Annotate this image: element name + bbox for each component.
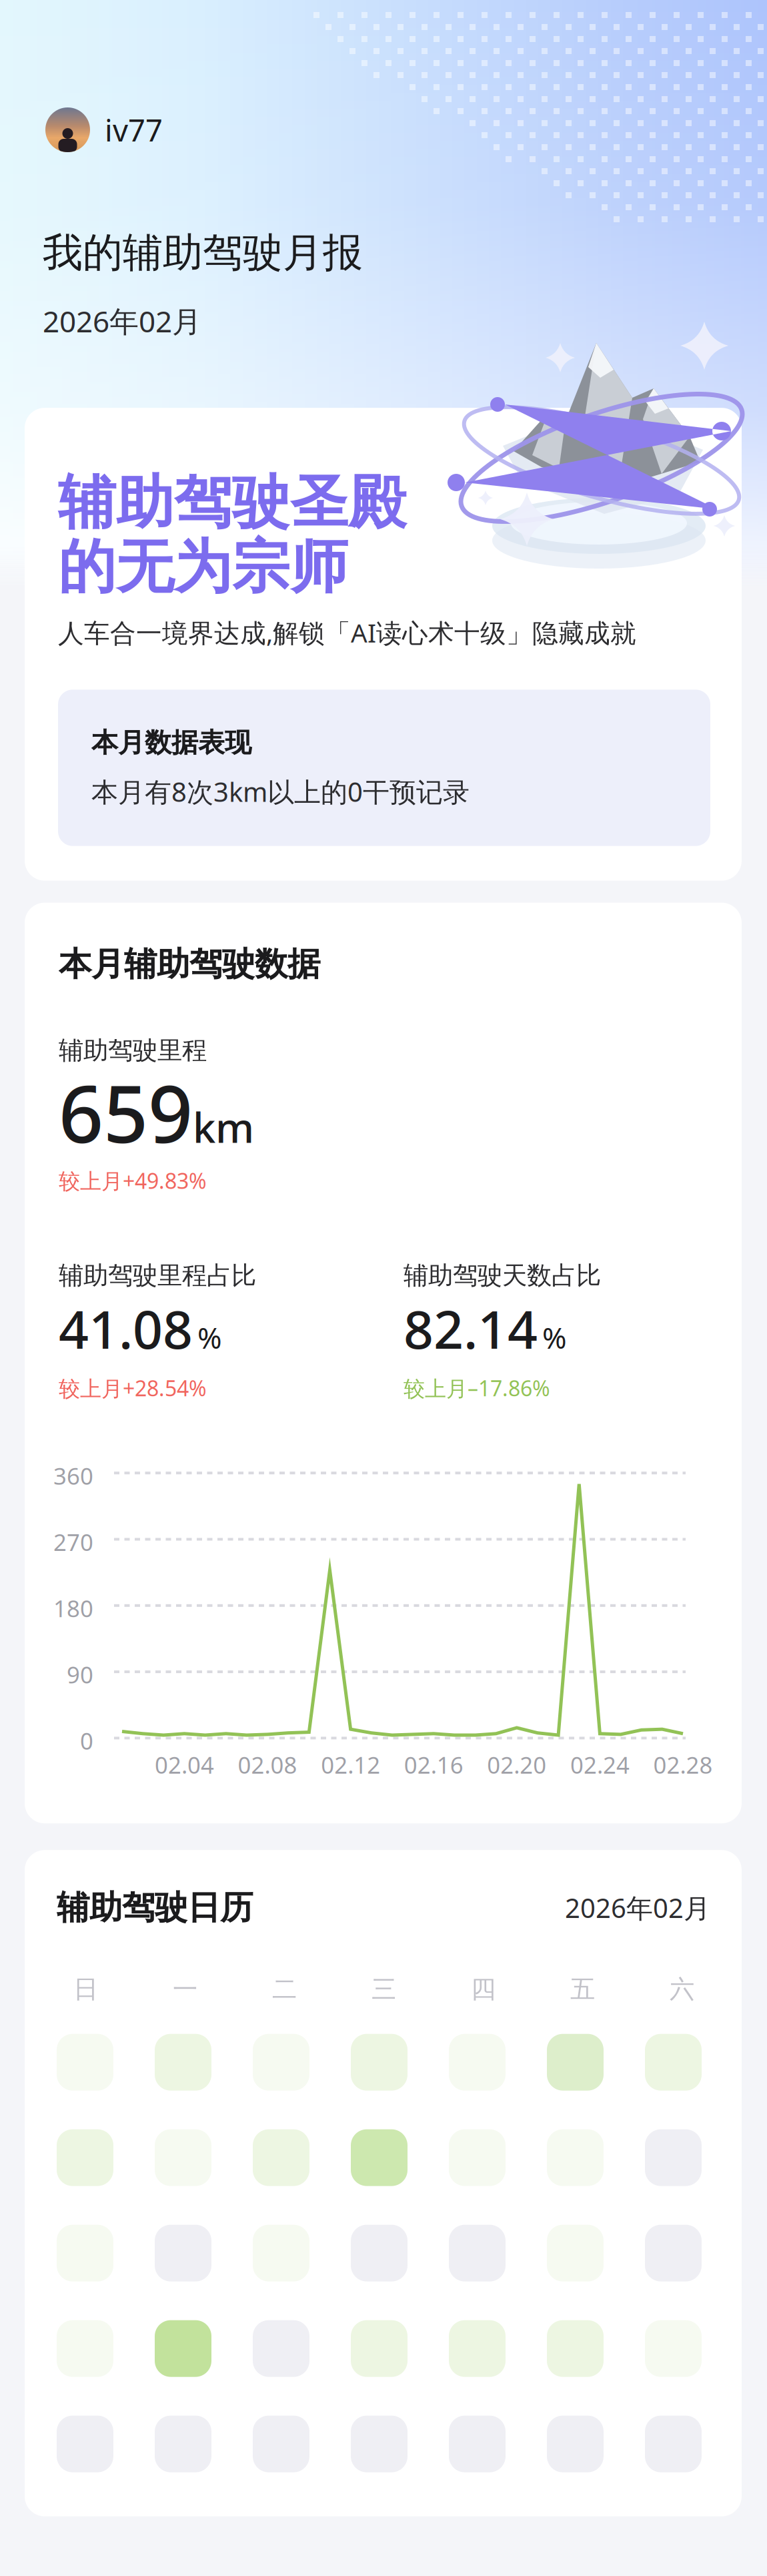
staticText: 2026年02月 bbox=[565, 1890, 710, 1925]
staticText: 02.04 bbox=[155, 1749, 214, 1780]
staticText: 02.20 bbox=[487, 1749, 546, 1780]
staticText: 辅助驾驶圣殿 bbox=[58, 467, 406, 538]
staticText: % bbox=[197, 1318, 222, 1357]
staticText: 二 bbox=[272, 1974, 297, 2005]
staticText: 90 bbox=[67, 1659, 93, 1690]
staticText: 四 bbox=[471, 1974, 496, 2005]
staticText: 辅助驾驶日历 bbox=[57, 1887, 253, 1928]
staticText: iv77 bbox=[105, 110, 163, 150]
staticText: 360 bbox=[53, 1460, 93, 1491]
staticText: 180 bbox=[53, 1593, 93, 1624]
staticText: 41.08 bbox=[59, 1293, 193, 1363]
staticText: 02.12 bbox=[321, 1749, 380, 1780]
staticText: 82.14 bbox=[404, 1293, 538, 1363]
staticText: 本月辅助驾驶数据 bbox=[59, 944, 320, 984]
staticText: 一 bbox=[173, 1974, 197, 2005]
staticText: 的无为宗师 bbox=[58, 532, 348, 603]
staticText: 日 bbox=[73, 1974, 98, 2005]
staticText: 02.28 bbox=[653, 1749, 713, 1780]
staticText: km bbox=[193, 1100, 254, 1154]
staticText: 02.08 bbox=[238, 1749, 297, 1780]
staticText: 较上月–17.86% bbox=[404, 1374, 550, 1402]
staticText: 本月数据表现 bbox=[91, 726, 251, 759]
staticText: 五 bbox=[570, 1974, 595, 2005]
staticText: 辅助驾驶里程 bbox=[59, 1035, 207, 1066]
staticText: 2026年02月 bbox=[43, 301, 201, 340]
staticText: 270 bbox=[53, 1527, 93, 1557]
staticText: 我的辅助驾驶月报 bbox=[43, 228, 363, 277]
staticText: 六 bbox=[670, 1974, 694, 2005]
staticText: 辅助驾驶里程占比 bbox=[59, 1260, 256, 1291]
staticText: 02.16 bbox=[404, 1749, 463, 1780]
staticText: 本月有8次3km以上的0干预记录 bbox=[91, 774, 470, 809]
staticText: 659 bbox=[59, 1060, 193, 1164]
staticText: 较上月+49.83% bbox=[59, 1166, 207, 1195]
staticText: 02.24 bbox=[570, 1749, 630, 1780]
staticText: 辅助驾驶天数占比 bbox=[404, 1260, 601, 1291]
staticText: 0 bbox=[80, 1725, 93, 1756]
staticText: % bbox=[542, 1318, 567, 1357]
staticText: 三 bbox=[371, 1974, 396, 2005]
staticText: 较上月+28.54% bbox=[59, 1374, 207, 1402]
staticText: 人车合一境界达成,解锁「AI读心术十级」隐藏成就 bbox=[58, 615, 636, 650]
